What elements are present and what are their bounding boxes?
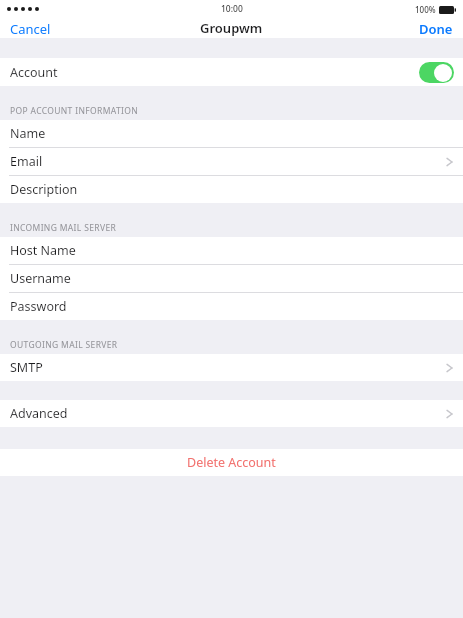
button[interactable]: Advanced: [0, 400, 463, 427]
staticText: POP ACCOUNT INFORMATION: [10, 105, 139, 117]
staticText: Name: [10, 125, 46, 142]
staticText: SMTP: [10, 359, 43, 376]
staticText: Groupwm: [200, 19, 263, 37]
button[interactable]: Delete Account: [0, 449, 463, 476]
staticText: 100%: [415, 4, 436, 15]
staticText: Password: [10, 298, 67, 315]
button[interactable]: Account on: [419, 62, 454, 83]
staticText: 10:00: [221, 3, 243, 15]
staticText: Advanced: [10, 405, 68, 422]
button[interactable]: Host Name: [0, 237, 463, 264]
staticText: Done: [419, 20, 453, 36]
staticText: OUTGOING MAIL SERVER: [10, 339, 118, 351]
staticText: INCOMING MAIL SERVER: [10, 222, 117, 234]
staticText: Username: [10, 270, 71, 287]
button[interactable]: Username: [0, 265, 463, 292]
staticText: Host Name: [10, 242, 76, 259]
button[interactable]: Name: [0, 120, 463, 147]
button[interactable]: Done: [409, 18, 463, 38]
button[interactable]: Description: [0, 176, 463, 203]
button[interactable]: SMTP: [0, 354, 463, 381]
button[interactable]: Account: [0, 58, 463, 86]
staticText: Description: [10, 181, 78, 198]
staticText: Delete Account: [187, 454, 276, 471]
button[interactable]: Cancel: [0, 18, 61, 38]
button[interactable]: Password: [0, 293, 463, 320]
staticText: Account: [10, 64, 58, 81]
staticText: Email: [10, 153, 43, 170]
button[interactable]: Email: [0, 148, 463, 175]
staticText: Cancel: [10, 20, 51, 36]
